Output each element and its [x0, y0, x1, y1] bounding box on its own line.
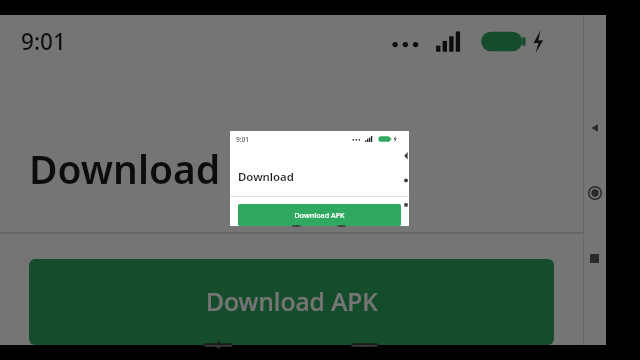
button[interactable]: Recents	[583, 245, 606, 271]
staticText: Download	[238, 169, 294, 185]
staticText: Download APK	[206, 285, 378, 319]
button[interactable]: Download APK	[29, 259, 554, 345]
staticText: Download	[29, 142, 221, 195]
button[interactable]: Download APK	[238, 204, 401, 226]
staticText: Download APK	[294, 210, 345, 220]
staticText: 9:01	[21, 26, 66, 57]
button[interactable]: Back	[583, 115, 606, 141]
staticText: 9:01	[236, 135, 250, 144]
button[interactable]: Home	[583, 180, 606, 206]
button[interactable]: 9:01	[230, 131, 409, 226]
